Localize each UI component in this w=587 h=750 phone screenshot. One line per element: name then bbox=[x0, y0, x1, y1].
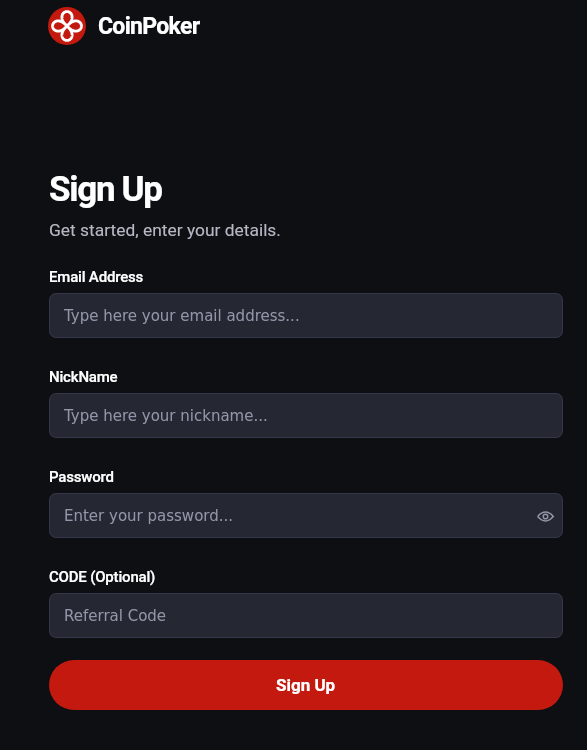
staticText: Password bbox=[49, 468, 114, 486]
staticText: Sign Up bbox=[49, 169, 162, 210]
staticText: Type here your nickname... bbox=[64, 407, 268, 424]
button[interactable]: Type here your nickname... bbox=[49, 393, 563, 438]
button[interactable]: Referral Code bbox=[49, 593, 563, 638]
staticText: Referral Code bbox=[64, 607, 167, 624]
staticText: Type here your email address... bbox=[64, 307, 300, 324]
staticText: Enter your password... bbox=[64, 507, 234, 524]
staticText: Sign Up bbox=[276, 675, 336, 695]
button[interactable]: Type here your email address... bbox=[49, 293, 563, 338]
staticText: NickName bbox=[49, 368, 118, 386]
button[interactable]: Sign Up bbox=[49, 660, 563, 710]
staticText: CODE (Optional) bbox=[49, 568, 156, 586]
staticText: Get started, enter your details. bbox=[49, 220, 281, 240]
button[interactable]: Enter your password... bbox=[49, 493, 563, 538]
staticText: CoinPoker bbox=[98, 13, 200, 40]
button[interactable]: CoinPoker bbox=[48, 7, 200, 45]
staticText: Email Address bbox=[49, 268, 144, 286]
button[interactable]: Show password bbox=[533, 504, 557, 528]
